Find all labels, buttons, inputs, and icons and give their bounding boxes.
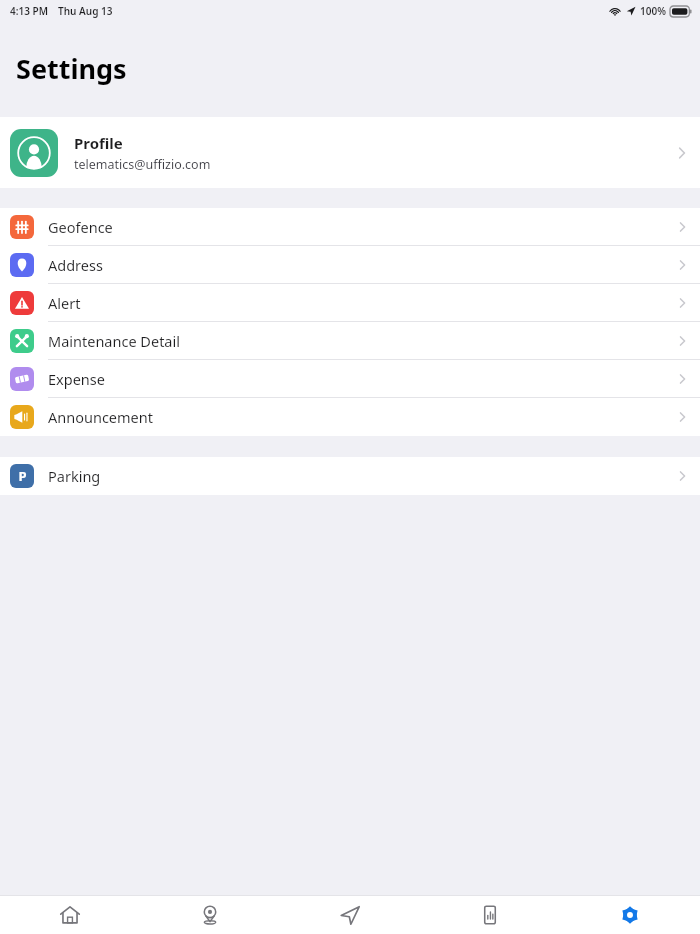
button[interactable]: Home <box>0 896 140 934</box>
staticText: Announcement <box>48 407 679 427</box>
staticText: 4:13 PM <box>10 4 48 18</box>
staticText: Settings <box>16 50 127 87</box>
staticText: Address <box>48 255 679 275</box>
button[interactable]: Track <box>280 896 420 934</box>
button[interactable]: Expense <box>0 360 700 398</box>
staticText: telematics@uffizio.com <box>74 156 211 173</box>
staticText: Geofence <box>48 217 679 237</box>
staticText: Expense <box>48 369 679 389</box>
button[interactable]: Maintenance Detail <box>0 322 700 360</box>
button[interactable]: Announcement <box>0 398 700 436</box>
staticText: Thu Aug 13 <box>58 4 113 18</box>
staticText: Alert <box>48 293 679 313</box>
staticText: Profile <box>74 133 123 153</box>
staticText: Parking <box>48 466 679 486</box>
button[interactable]: Profile <box>0 117 700 188</box>
button[interactable]: Address <box>0 246 700 284</box>
button[interactable]: Settings <box>560 896 700 934</box>
button[interactable]: Geofence <box>0 208 700 246</box>
staticText: 100% <box>640 4 666 18</box>
button[interactable]: Alert <box>0 284 700 322</box>
staticText: Maintenance Detail <box>48 331 679 351</box>
button[interactable]: P <box>0 457 700 495</box>
staticText: P <box>18 467 27 485</box>
button[interactable]: Places <box>140 896 280 934</box>
button[interactable]: Reports <box>420 896 560 934</box>
